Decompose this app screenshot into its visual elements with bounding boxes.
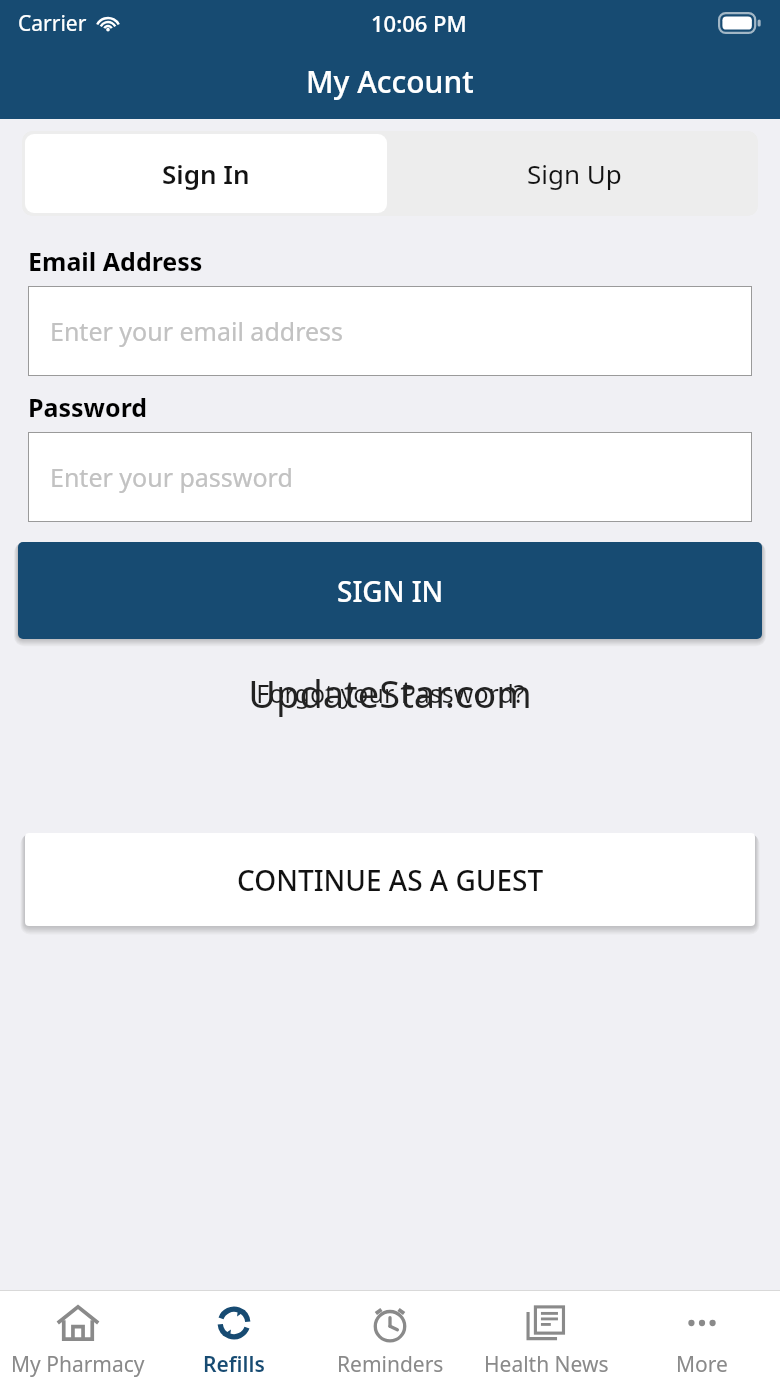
staticText: 10:06 PM [371, 8, 467, 38]
button[interactable]: Reminders [312, 1291, 468, 1387]
staticText: Refills [203, 1350, 265, 1379]
staticText: CONTINUE AS A GUEST [237, 861, 544, 899]
staticText: My Account [306, 61, 474, 102]
staticText: SIGN IN [337, 572, 444, 610]
staticText: My Pharmacy [11, 1350, 145, 1379]
staticText: UpdateStar.com [248, 667, 532, 719]
staticText: Enter your email address [50, 314, 344, 348]
staticText: Enter your password [50, 460, 293, 494]
staticText: Email Address [28, 244, 203, 278]
staticText: Health News [484, 1350, 609, 1379]
staticText: Sign Up [527, 156, 622, 191]
button[interactable]: Sign Up [390, 131, 758, 216]
button[interactable]: Sign In [25, 134, 387, 213]
button[interactable]: Forgot your Password? [0, 676, 780, 710]
button[interactable]: Health News [468, 1291, 624, 1387]
button[interactable]: CONTINUE AS A GUEST [25, 833, 755, 926]
staticText: More [676, 1350, 728, 1379]
staticText: Sign In [162, 156, 250, 191]
button[interactable]: Refills [156, 1291, 312, 1387]
button[interactable]: More [624, 1291, 780, 1387]
staticText: Reminders [337, 1350, 444, 1379]
button[interactable]: SIGN IN [18, 542, 762, 639]
staticText: Forgot your Password? [256, 676, 525, 710]
button[interactable]: Enter your email address [28, 286, 752, 376]
button[interactable]: Enter your password [28, 432, 752, 522]
staticText: Password [28, 390, 148, 424]
staticText: Carrier [18, 9, 87, 38]
button[interactable]: My Pharmacy [0, 1291, 156, 1387]
